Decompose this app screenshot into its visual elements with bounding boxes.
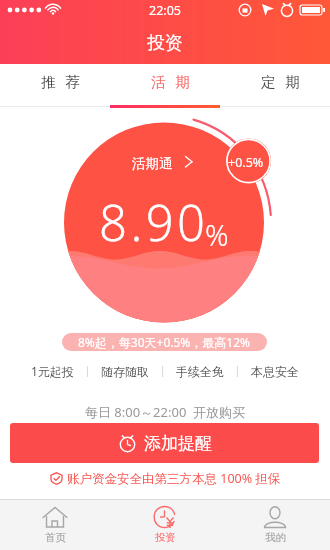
staticText: 随存随取	[101, 364, 149, 379]
staticText: 活期通	[132, 155, 173, 172]
staticText: 1元起投	[31, 363, 74, 379]
staticText: 8.90	[99, 189, 209, 256]
staticText: 本息安全	[251, 364, 299, 379]
staticText: 添加提醒	[144, 433, 212, 454]
button[interactable]: 添加提醒	[10, 423, 319, 463]
staticText: 定期	[256, 73, 305, 91]
staticText: +0.5%	[228, 154, 264, 171]
staticText: %	[205, 215, 229, 254]
button[interactable]: 推荐	[0, 64, 110, 108]
button[interactable]: 首页	[0, 500, 110, 550]
staticText: 8%起，每30天+0.5%，最高12%	[78, 334, 251, 350]
staticText: 首页	[45, 531, 66, 544]
staticText: 推荐	[36, 73, 85, 91]
staticText: 我的	[265, 531, 286, 544]
button[interactable]: 我的	[220, 500, 330, 550]
button[interactable]: 定期	[220, 64, 330, 108]
button[interactable]: 投资	[110, 500, 220, 550]
staticText: 手续全免	[176, 364, 224, 379]
staticText: 账户资金安全由第三方本息 100% 担保	[67, 470, 281, 487]
staticText: 活期	[146, 73, 195, 91]
staticText: 每日 8:00～22:00 开放购买	[0, 403, 330, 421]
staticText: 投资	[155, 531, 176, 544]
staticText: 22:05	[149, 2, 181, 19]
button[interactable]: 活期	[110, 64, 220, 108]
staticText: 投资	[147, 32, 183, 55]
